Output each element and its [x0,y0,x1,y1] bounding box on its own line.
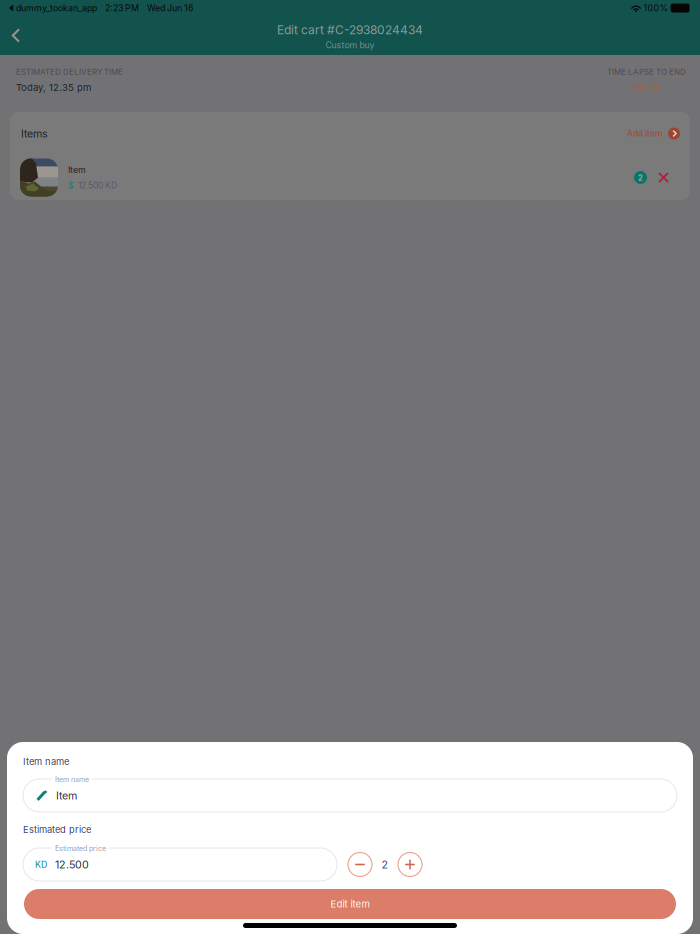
staticText: Item [56,789,77,802]
button[interactable]: Add item [627,127,680,139]
staticText: 2 [638,173,643,182]
staticText: KD [35,859,47,870]
button[interactable]: Item [10,155,690,200]
staticText: Item [68,164,86,175]
staticText: Items [21,127,48,140]
staticText: 12.500 [55,858,89,871]
button[interactable]: Increase quantity [398,852,422,876]
staticText: Item name [55,775,89,784]
staticText: Today, 12.35 pm [16,82,91,93]
staticText: Estimated price [55,844,106,853]
button[interactable]: Edit item [24,889,676,919]
staticText: 00:00 [633,82,660,93]
staticText: Edit cart #C-2938024434 [277,23,423,37]
staticText: Wed Jun 16 [139,3,193,13]
button[interactable]: Back [0,18,32,52]
staticText: dummy_tookan_app [14,3,97,13]
staticText: Add item [627,128,662,138]
button[interactable]: Decrease quantity [348,852,372,876]
staticText: $ [68,180,73,190]
staticText: TIME LAPSE TO END [607,67,686,77]
staticText: Edit item [330,898,369,910]
staticText: 12.500 KD [78,180,117,190]
staticText: Item name [23,756,69,767]
staticText: Custom buy [325,40,374,50]
staticText: Estimated price [23,824,91,835]
staticText: 2 [381,858,388,871]
staticText: 2:23 PM [97,3,139,13]
staticText: ESTIMATED DELIVERY TIME [16,67,123,77]
staticText: 100% [642,3,671,13]
